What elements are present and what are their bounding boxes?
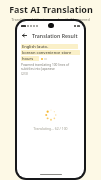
staticText: English (auto-generated)Eating ONLY: [22, 44, 77, 49]
staticText: hours stay: [22, 56, 38, 61]
staticText: Powered translating 100 lines of subtitl…: [21, 63, 80, 71]
staticText: Translation Result: [32, 32, 78, 39]
button[interactable]: Back: [21, 32, 28, 39]
staticText: korean convenience store foods for 24: [22, 50, 79, 55]
staticText: (2/3): [21, 72, 28, 76]
staticText: Translate subtitles in seconds with AI-p…: [11, 17, 90, 22]
staticText: Translating... 62 / 100: [33, 126, 68, 131]
staticText: Fast AI Translation: [9, 3, 93, 15]
